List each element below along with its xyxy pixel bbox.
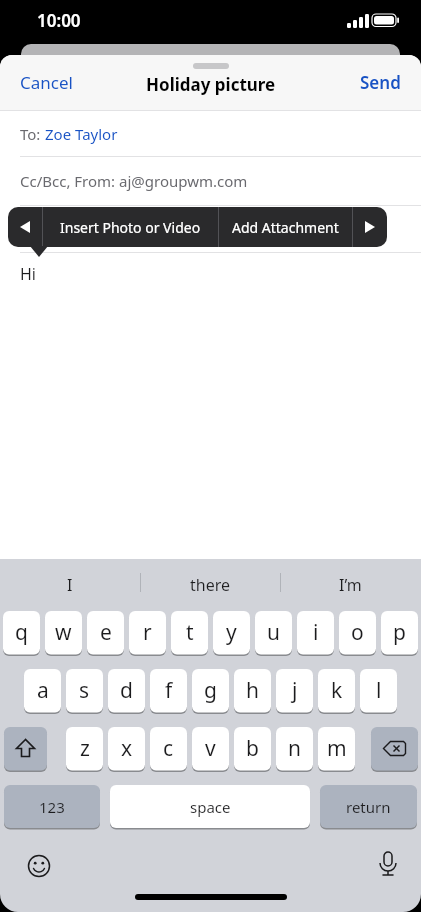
staticText: g (204, 676, 217, 705)
button[interactable]: b (234, 727, 271, 772)
button[interactable]: Insert Photo or Video (43, 207, 218, 247)
button[interactable]: n (276, 727, 313, 772)
staticText: I (67, 574, 73, 596)
button[interactable]: To: (0, 111, 421, 156)
button[interactable]: Send (360, 71, 401, 94)
button[interactable]: Cancel (20, 71, 73, 94)
staticText: t (186, 618, 194, 647)
staticText: s (79, 676, 90, 705)
button[interactable]: p (381, 611, 418, 656)
staticText: i (313, 618, 319, 647)
button[interactable]: r (129, 611, 166, 656)
button[interactable]: c (150, 727, 187, 772)
button[interactable]: x (108, 727, 145, 772)
button[interactable]: d (108, 669, 145, 714)
button[interactable] (4, 727, 47, 772)
staticText: w (55, 618, 72, 647)
staticText: e (100, 618, 112, 647)
button[interactable]: space (110, 785, 310, 830)
button[interactable]: I (0, 562, 140, 608)
staticText: Insert Photo or Video (60, 218, 201, 237)
staticText: l (376, 676, 382, 705)
button[interactable]: w (45, 611, 82, 656)
button[interactable]: return (320, 785, 417, 830)
staticText: there (190, 574, 231, 596)
staticText: f (165, 676, 173, 705)
button[interactable]: there (140, 562, 280, 608)
staticText: n (288, 734, 301, 763)
staticText: c (163, 734, 174, 763)
button[interactable]: 123 (4, 785, 100, 830)
button[interactable]: y (213, 611, 250, 656)
staticText: p (393, 618, 406, 647)
staticText: b (246, 734, 259, 763)
button[interactable]: t (171, 611, 208, 656)
button[interactable]: I’m (280, 562, 421, 608)
staticText: y (226, 618, 237, 647)
staticText: r (143, 618, 152, 647)
button[interactable]: h (234, 669, 271, 714)
staticText: Send (360, 71, 401, 94)
button[interactable]: f (150, 669, 187, 714)
button[interactable]: Cc/Bcc, From: aj@groupwm.com (0, 157, 421, 205)
button[interactable]: z (66, 727, 103, 772)
staticText: Zoe Taylor (45, 124, 118, 144)
staticText: To: (20, 124, 45, 144)
button[interactable]: q (3, 611, 40, 656)
staticText: j (292, 676, 298, 705)
staticText: Holiday picture (146, 73, 276, 96)
button[interactable] (371, 727, 418, 772)
button[interactable]: v (192, 727, 229, 772)
staticText: a (37, 676, 49, 705)
staticText: x (121, 734, 133, 763)
staticText: z (80, 734, 90, 763)
staticText: h (246, 676, 259, 705)
staticText: 123 (39, 797, 65, 817)
button[interactable]: Add Attachment (219, 207, 352, 247)
staticText: m (327, 734, 347, 763)
staticText: 10:00 (37, 9, 81, 32)
button[interactable]: a (24, 669, 61, 714)
button[interactable]: l (360, 669, 397, 714)
button[interactable]: k (318, 669, 355, 714)
staticText: Hi (20, 263, 36, 285)
button[interactable]: m (318, 727, 355, 772)
staticText: o (351, 618, 364, 647)
button[interactable] (8, 207, 42, 247)
staticText: Cc/Bcc, From: aj@groupwm.com (20, 171, 248, 191)
staticText: q (15, 618, 28, 647)
button[interactable]: e (87, 611, 124, 656)
staticText: k (331, 676, 343, 705)
staticText: I’m (339, 574, 362, 596)
staticText: space (190, 797, 231, 817)
staticText: Add Attachment (232, 218, 339, 237)
staticText: v (205, 734, 216, 763)
button[interactable]: i (297, 611, 334, 656)
button[interactable]: o (339, 611, 376, 656)
staticText: u (267, 618, 280, 647)
button[interactable] (353, 207, 387, 247)
staticText: d (120, 676, 133, 705)
staticText: Cancel (20, 71, 73, 94)
staticText: return (346, 797, 391, 817)
button[interactable]: j (276, 669, 313, 714)
button[interactable]: g (192, 669, 229, 714)
button[interactable]: u (255, 611, 292, 656)
button[interactable]: s (66, 669, 103, 714)
